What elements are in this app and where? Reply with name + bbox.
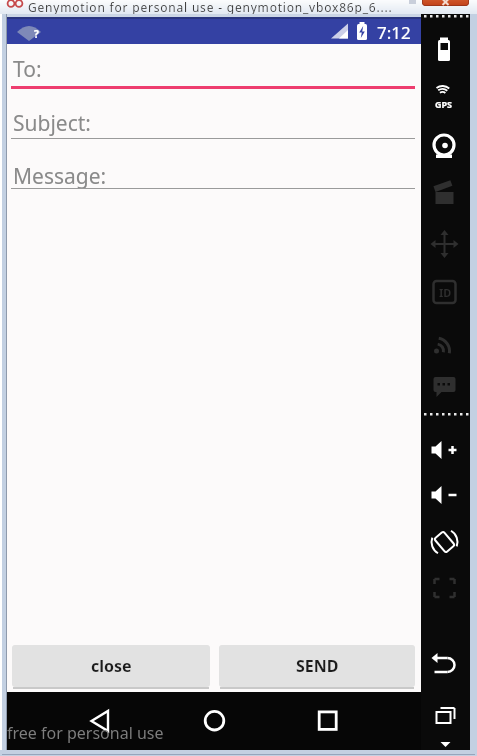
- staticText: Message:: [13, 162, 107, 191]
- button[interactable]: [423, 325, 468, 355]
- staticText: SEND: [296, 655, 339, 677]
- staticText: GPS: [435, 98, 453, 110]
- button[interactable]: [423, 435, 468, 465]
- button[interactable]: [422, 0, 469, 6]
- button[interactable]: close: [12, 645, 210, 687]
- button[interactable]: Subject:: [11, 106, 415, 138]
- button[interactable]: [423, 33, 468, 63]
- button[interactable]: [423, 182, 468, 212]
- staticText: Subject:: [13, 109, 91, 138]
- button[interactable]: [423, 527, 468, 557]
- button[interactable]: [423, 371, 468, 401]
- button[interactable]: To:: [11, 52, 415, 86]
- staticText: close: [91, 655, 132, 677]
- button[interactable]: Message:: [11, 159, 415, 190]
- staticText: ?: [34, 27, 39, 41]
- button[interactable]: [423, 277, 468, 307]
- button[interactable]: [423, 82, 468, 112]
- staticText: 7:12: [377, 21, 411, 44]
- staticText: Genymotion for personal use - genymotion…: [28, 0, 393, 15]
- staticText: free for personal use: [7, 722, 164, 744]
- button[interactable]: [313, 706, 343, 736]
- button[interactable]: [423, 229, 468, 259]
- button[interactable]: SEND: [219, 645, 415, 687]
- button[interactable]: [85, 706, 115, 736]
- button[interactable]: [423, 573, 468, 603]
- button[interactable]: [200, 706, 230, 736]
- button[interactable]: [423, 702, 468, 732]
- staticText: ID: [439, 285, 452, 300]
- button[interactable]: [423, 650, 468, 680]
- button[interactable]: [423, 131, 468, 161]
- staticText: To:: [13, 55, 42, 84]
- button[interactable]: [423, 480, 468, 510]
